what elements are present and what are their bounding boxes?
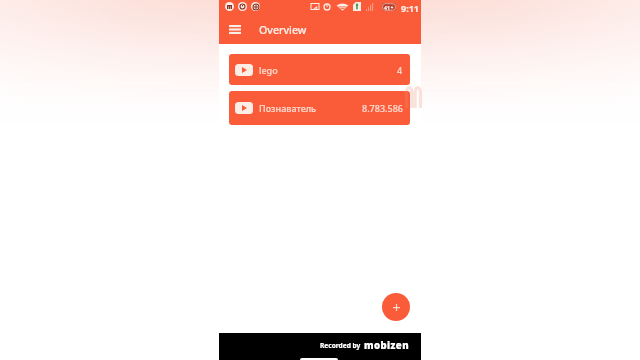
staticText: Overview — [259, 23, 307, 37]
staticText: Познаватель — [259, 102, 317, 114]
button[interactable]: Познаватель — [229, 91, 410, 125]
staticText: 8.783.586 — [362, 102, 403, 114]
staticText: mobizen — [364, 339, 410, 352]
button[interactable]: Menu — [223, 19, 246, 39]
button[interactable]: Add — [382, 293, 410, 321]
staticText: lego — [259, 64, 278, 76]
staticText: 4 — [397, 64, 403, 76]
staticText: 9:11 — [401, 2, 419, 14]
staticText: 41 — [384, 4, 390, 11]
button[interactable]: lego — [229, 54, 410, 85]
staticText: Recorded by — [320, 341, 361, 350]
